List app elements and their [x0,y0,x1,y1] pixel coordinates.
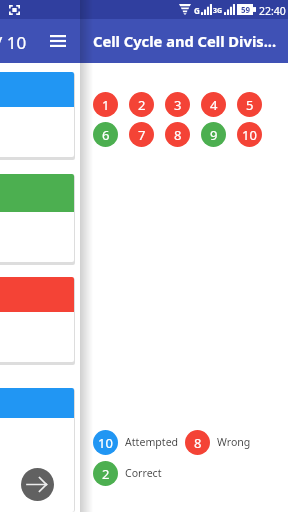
staticText: 8 [194,434,202,452]
staticText: 3 [174,96,182,114]
staticText: 6 [102,126,110,144]
button[interactable] [0,72,74,157]
button[interactable]: Next [21,468,54,501]
button[interactable]: Menu [47,30,69,52]
button[interactable]: 2 [129,92,154,117]
staticText: / 10 [0,31,27,54]
button[interactable]: 5 [237,92,262,117]
staticText: 9 [210,126,218,144]
staticText: Attempted [125,435,179,449]
staticText: Wrong [217,435,251,449]
button[interactable]: 4 [201,92,226,117]
button[interactable] [0,277,74,362]
staticText: 5 [246,96,254,114]
button[interactable]: 1 [93,92,118,117]
button[interactable]: 9 [201,122,226,147]
button[interactable]: 2 [93,461,162,486]
button[interactable]: 10 [93,430,179,455]
button[interactable] [0,388,74,512]
staticText: 2 [102,465,110,483]
other: Screenshot [9,5,20,15]
staticText: Correct [125,466,162,480]
button[interactable]: 6 [93,122,118,147]
button[interactable]: 10 [237,122,262,147]
staticText: 22:40 [259,4,286,18]
staticText: 2 [138,96,146,114]
staticText: G [194,5,200,16]
staticText: 8 [174,126,182,144]
staticText: Cell Cycle and Cell Divis... [93,31,277,51]
button[interactable]: 3 [165,92,190,117]
button[interactable]: 8 [185,430,251,455]
staticText: 1 [102,96,110,114]
staticText: 10 [98,434,113,452]
staticText: 10 [242,126,257,144]
staticText: 59 [241,4,251,15]
button[interactable]: 7 [129,122,154,147]
button[interactable] [0,174,74,262]
staticText: 4 [210,96,218,114]
staticText: 3G [213,6,223,16]
staticText: 7 [138,126,146,144]
button[interactable]: 8 [165,122,190,147]
